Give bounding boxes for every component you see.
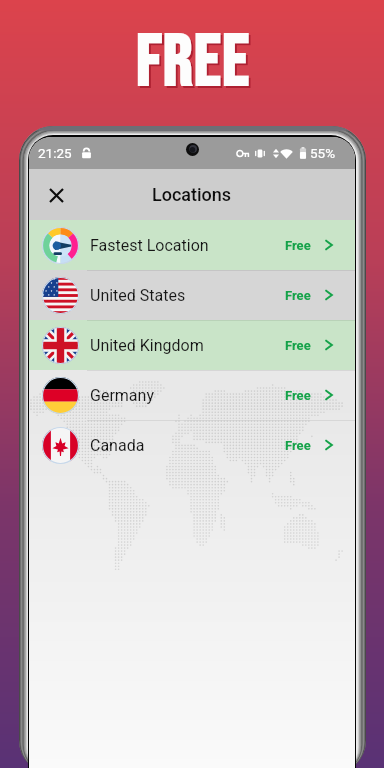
button[interactable]: United Kingdom bbox=[29, 320, 355, 370]
staticText: 55% bbox=[310, 145, 336, 161]
staticText: Free bbox=[285, 338, 311, 353]
button[interactable]: Canada bbox=[29, 420, 355, 470]
staticText: Free bbox=[285, 438, 311, 453]
staticText: 21:25 bbox=[38, 145, 72, 161]
button[interactable]: Fastest Location bbox=[29, 220, 355, 270]
staticText: Free bbox=[285, 388, 311, 403]
staticText: Free bbox=[285, 288, 311, 303]
staticText: United States bbox=[90, 286, 186, 305]
staticText: Germany bbox=[90, 386, 154, 405]
staticText: Fastest Location bbox=[90, 236, 209, 255]
staticText: Free bbox=[285, 238, 311, 253]
staticText: FREE bbox=[135, 21, 250, 107]
staticText: Locations bbox=[152, 184, 232, 205]
staticText: FREE bbox=[137, 23, 252, 109]
button[interactable]: Close bbox=[36, 175, 76, 215]
button[interactable]: Germany bbox=[29, 370, 355, 420]
staticText: United Kingdom bbox=[90, 336, 204, 355]
button[interactable]: United States bbox=[29, 270, 355, 320]
staticText: Canada bbox=[90, 436, 145, 455]
